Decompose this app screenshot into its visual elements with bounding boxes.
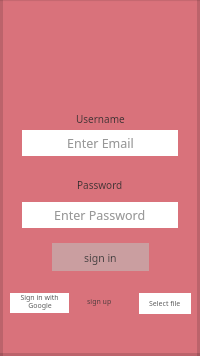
staticText: sign in: [84, 251, 117, 265]
staticText: Sign in with: [20, 293, 59, 303]
button[interactable]: sign in: [52, 243, 149, 271]
staticText: sign up: [87, 297, 112, 307]
staticText: Password: [77, 178, 123, 192]
button[interactable]: Select file: [139, 293, 191, 314]
staticText: Username: [76, 112, 125, 126]
staticText: Enter Password: [54, 207, 146, 224]
button[interactable]: sign up: [84, 295, 115, 309]
button[interactable]: Enter Email: [22, 130, 178, 156]
staticText: Google: [28, 301, 52, 311]
button[interactable]: Enter Password: [22, 202, 178, 228]
staticText: Enter Email: [67, 135, 134, 152]
button[interactable]: Sign in with: [10, 293, 69, 313]
staticText: Select file: [149, 299, 181, 309]
